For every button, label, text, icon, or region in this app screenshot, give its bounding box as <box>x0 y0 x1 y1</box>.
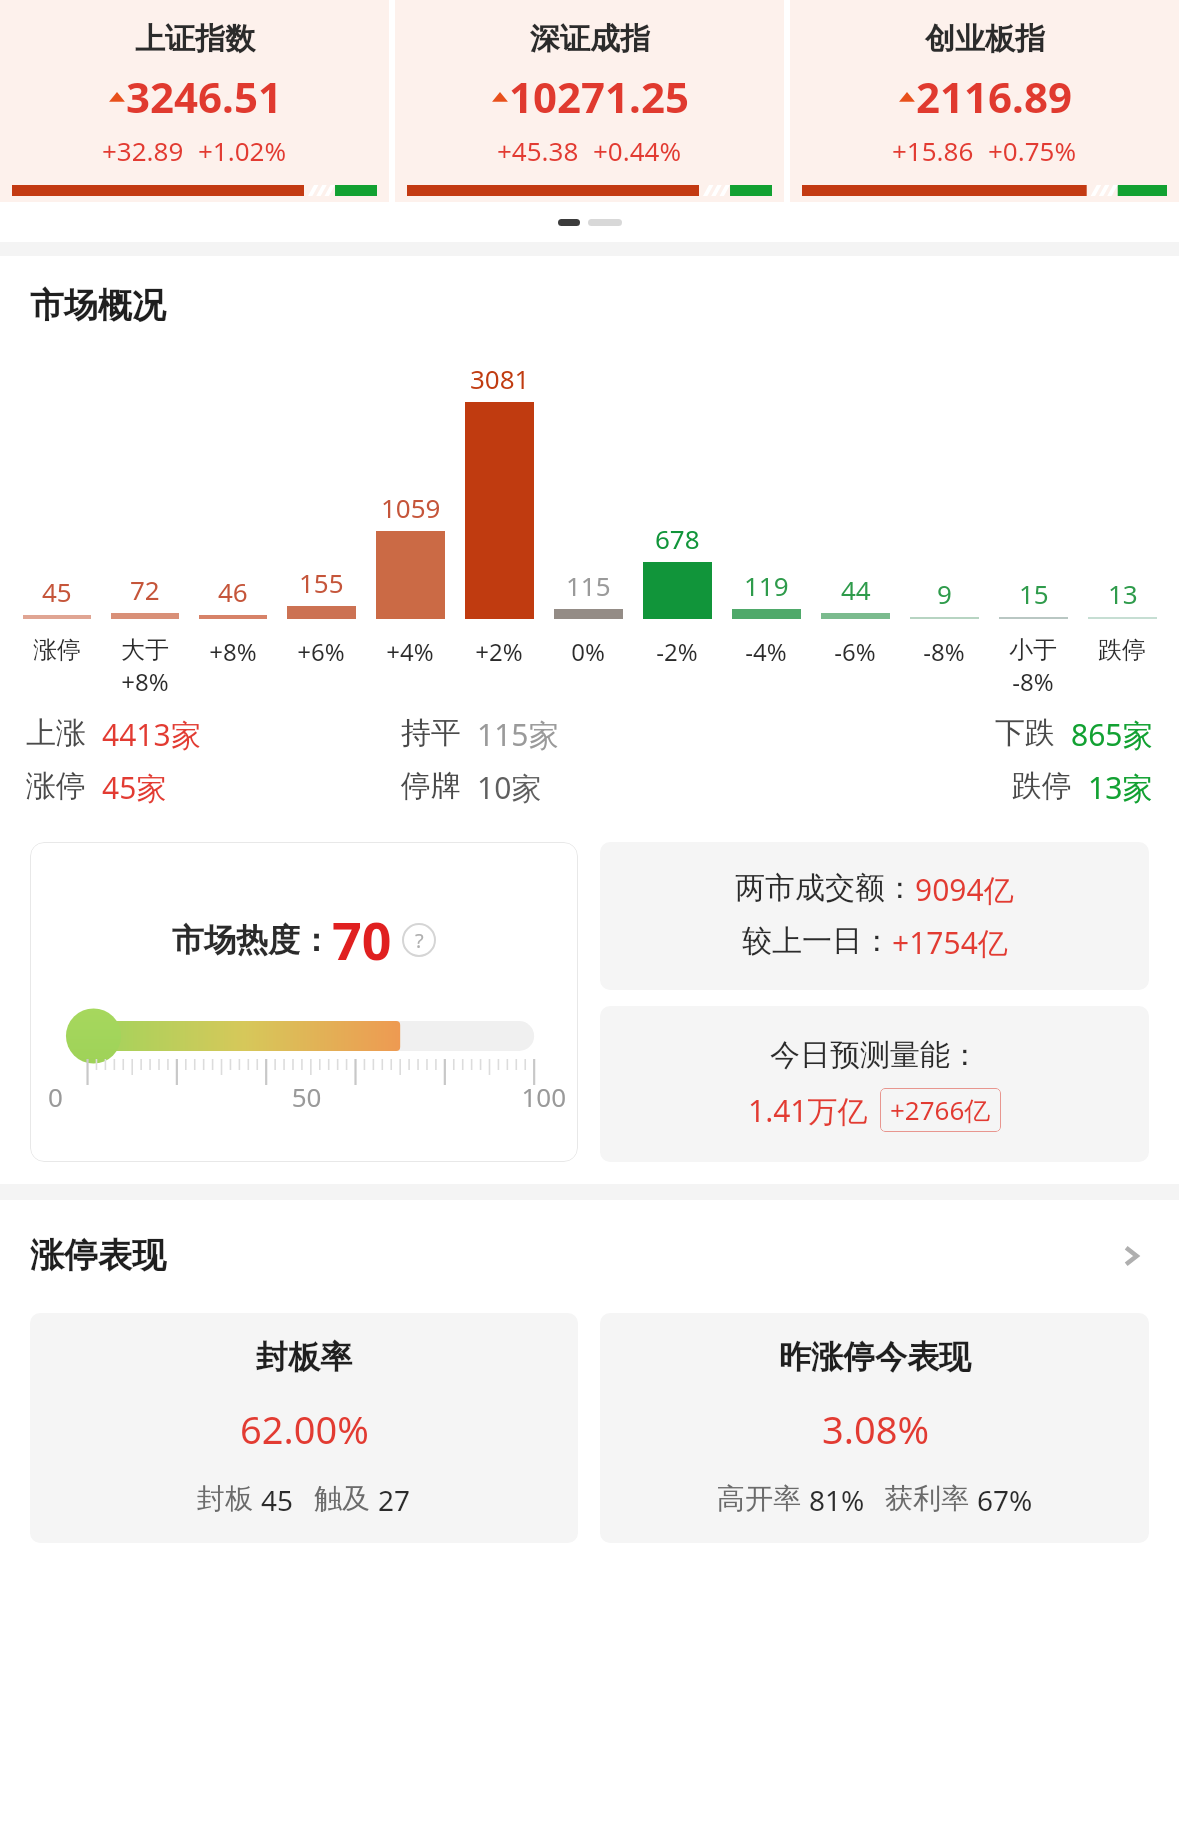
staticText: -8% <box>1012 665 1054 698</box>
staticText: 今日预测量能： <box>770 1036 980 1074</box>
staticText: 115家 <box>477 714 559 755</box>
staticText: 10271.25 <box>509 68 689 125</box>
staticText: 涨停 <box>33 635 81 665</box>
staticText: 10家 <box>477 767 542 808</box>
staticText: 2116.89 <box>916 68 1072 125</box>
staticText: 678 <box>655 521 700 556</box>
staticText: +2% <box>475 635 523 668</box>
staticText: -6% <box>834 635 876 668</box>
staticText: 跌停 <box>1012 767 1072 805</box>
staticText: 小于 <box>1009 635 1057 665</box>
staticText: 50 <box>220 1079 393 1114</box>
staticText: +1.02% <box>198 133 287 168</box>
staticText: 跌停 <box>1098 635 1146 665</box>
button[interactable]: 创业板指 <box>790 0 1179 202</box>
staticText: 触及 <box>314 1481 370 1516</box>
staticText: 155 <box>299 565 344 600</box>
staticText: 市场概况 <box>30 284 166 327</box>
staticText: 0 <box>48 1079 220 1114</box>
staticText: +15.86 <box>892 133 974 168</box>
staticText: 45家 <box>102 767 167 808</box>
staticText: 62.00% <box>240 1403 369 1455</box>
button[interactable]: 封板率 <box>30 1313 578 1543</box>
staticText: 获利率 <box>885 1481 969 1516</box>
staticText: 停牌 <box>401 767 461 805</box>
staticText: 115 <box>566 568 611 603</box>
staticText: -8% <box>923 635 965 668</box>
button[interactable]: 两市成交额： <box>600 842 1149 990</box>
staticText: 3246.51 <box>126 68 282 125</box>
staticText: 13家 <box>1088 767 1153 808</box>
staticText: 9094亿 <box>915 869 1014 910</box>
staticText: 创业板指 <box>925 20 1045 58</box>
button[interactable]: 今日预测量能： <box>600 1006 1149 1162</box>
staticText: 封板 <box>197 1481 253 1516</box>
button[interactable]: 深证成指 <box>395 0 784 202</box>
staticText: 72 <box>130 572 160 607</box>
button[interactable]: 昨涨停今表现 <box>600 1313 1149 1543</box>
staticText: 涨停表现 <box>30 1234 1113 1277</box>
staticText: 两市成交额： <box>735 869 915 907</box>
other: 查看更多 <box>1113 1238 1149 1274</box>
staticText: +0.44% <box>593 133 682 168</box>
staticText: 封板率 <box>256 1337 352 1377</box>
staticText: 持平 <box>401 714 461 752</box>
staticText: 119 <box>744 568 789 603</box>
staticText: 13 <box>1108 576 1138 611</box>
staticText: ? <box>415 927 424 954</box>
staticText: 涨停 <box>26 767 86 805</box>
staticText: -4% <box>745 635 787 668</box>
staticText: 3081 <box>470 361 530 396</box>
staticText: 下跌 <box>995 714 1055 752</box>
staticText: -2% <box>656 635 698 668</box>
staticText: 市场热度： <box>172 920 332 960</box>
staticText: 1059 <box>381 490 441 525</box>
button[interactable]: 市场热度说明 <box>402 923 436 957</box>
staticText: 0% <box>571 635 605 668</box>
staticText: 27 <box>378 1481 411 1519</box>
staticText: 45 <box>42 574 72 609</box>
staticText: 1.41万亿 <box>748 1090 868 1131</box>
staticText: 70 <box>332 904 392 975</box>
staticText: 15 <box>1019 576 1049 611</box>
button[interactable]: 市场热度： <box>30 842 578 1162</box>
staticText: 上证指数 <box>135 20 255 58</box>
staticText: 上涨 <box>26 714 86 752</box>
staticText: 3.08% <box>822 1403 929 1455</box>
staticText: 9 <box>937 576 952 611</box>
staticText: 67% <box>977 1481 1033 1519</box>
button[interactable]: 涨停表现 <box>0 1234 1179 1277</box>
staticText: 44 <box>841 572 871 607</box>
button[interactable]: 上证指数 <box>0 0 389 202</box>
staticText: +8% <box>209 635 257 668</box>
staticText: 较上一日： <box>742 922 892 960</box>
staticText: 4413家 <box>102 714 201 755</box>
staticText: 高开率 <box>717 1481 801 1516</box>
staticText: +2766亿 <box>890 1092 991 1128</box>
staticText: 昨涨停今表现 <box>779 1337 971 1377</box>
staticText: +32.89 <box>102 133 184 168</box>
staticText: +1754亿 <box>892 922 1008 963</box>
staticText: +8% <box>121 665 169 698</box>
staticText: 865家 <box>1071 714 1153 755</box>
staticText: +45.38 <box>497 133 579 168</box>
staticText: 100 <box>393 1079 566 1114</box>
staticText: +4% <box>386 635 434 668</box>
staticText: 大于 <box>121 635 169 665</box>
staticText: 46 <box>218 574 248 609</box>
staticText: 45 <box>261 1481 294 1519</box>
staticText: +6% <box>297 635 345 668</box>
staticText: +0.75% <box>988 133 1077 168</box>
staticText: 深证成指 <box>530 20 650 58</box>
staticText: 81% <box>809 1481 865 1519</box>
